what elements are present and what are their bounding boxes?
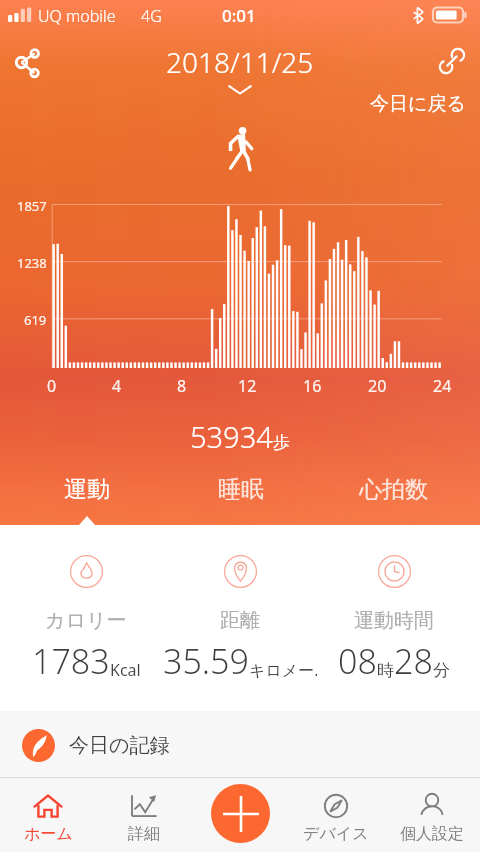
button[interactable]: ホーム xyxy=(0,778,96,852)
button[interactable]: 個人設定 xyxy=(384,778,480,852)
staticText: 20 xyxy=(368,375,387,397)
staticText: 4G xyxy=(141,5,162,27)
staticText: 24 xyxy=(433,375,452,397)
staticText: 53934 xyxy=(190,417,273,456)
staticText: キロメー… xyxy=(249,659,317,681)
staticText: 詳細 xyxy=(128,824,160,844)
staticText: 619 xyxy=(24,311,47,329)
staticText: 運動時間 xyxy=(354,608,434,633)
button[interactable]: カロリー xyxy=(9,555,163,684)
button[interactable]: Share xyxy=(4,37,52,85)
staticText: 8 xyxy=(177,375,187,397)
staticText: 睡眠 xyxy=(218,475,264,504)
staticText: 分 xyxy=(433,660,450,681)
staticText: 08 xyxy=(338,638,377,684)
staticText: 28 xyxy=(394,638,433,684)
button[interactable]: デバイス xyxy=(288,778,384,852)
button[interactable]: 睡眠 xyxy=(164,455,317,525)
staticText: UQ mobile xyxy=(38,5,116,27)
staticText: Kcal xyxy=(110,659,141,681)
button[interactable]: 運動時間 xyxy=(317,555,471,684)
staticText: ホーム xyxy=(24,824,73,844)
staticText: 運動 xyxy=(64,475,110,504)
staticText: 16 xyxy=(303,375,322,397)
staticText: 0 xyxy=(47,375,57,397)
staticText: 35.59 xyxy=(163,638,249,684)
staticText: 0:01 xyxy=(222,4,256,27)
staticText: カロリー xyxy=(45,608,127,633)
staticText: 12 xyxy=(238,375,257,397)
button[interactable]: 2018/11/25 xyxy=(166,43,314,93)
staticText: 今日の記録 xyxy=(69,733,170,758)
staticText: 4 xyxy=(112,375,122,397)
staticText: 1857 xyxy=(17,197,47,215)
button[interactable]: 今日の記録 xyxy=(0,714,480,777)
staticText: 時 xyxy=(377,660,394,681)
button[interactable]: Add xyxy=(211,784,270,843)
staticText: 個人設定 xyxy=(400,824,464,844)
staticText: 歩 xyxy=(273,432,290,453)
button[interactable]: 今日に戻る xyxy=(370,92,466,116)
button[interactable]: 運動 xyxy=(10,455,164,525)
button[interactable]: Link device xyxy=(428,37,476,85)
staticText: 2018/11/25 xyxy=(166,43,314,81)
button[interactable]: 心拍数 xyxy=(317,455,470,525)
staticText: 心拍数 xyxy=(359,475,428,504)
staticText: 距離 xyxy=(220,608,260,633)
button[interactable]: 距離 xyxy=(163,555,317,684)
staticText: 今日に戻る xyxy=(370,92,466,116)
staticText: 1238 xyxy=(17,254,47,272)
staticText: 1783 xyxy=(32,638,110,684)
staticText: デバイス xyxy=(303,824,369,844)
button[interactable]: 詳細 xyxy=(96,778,192,852)
